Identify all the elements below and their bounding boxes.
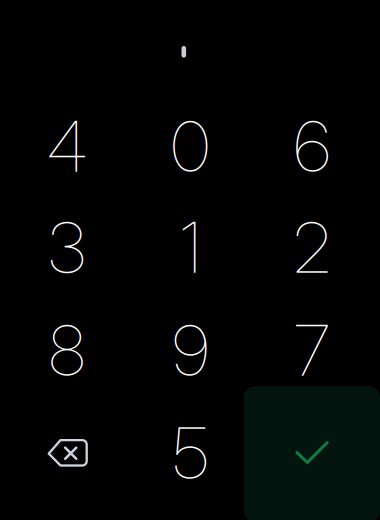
button[interactable]: 3 — [5, 196, 129, 298]
button[interactable]: Confirm — [244, 386, 380, 520]
staticText: 5 — [173, 411, 208, 495]
button[interactable]: 0 — [128, 95, 252, 197]
button[interactable]: 7 — [250, 299, 374, 401]
button[interactable]: 4 — [5, 95, 129, 197]
staticText: 7 — [294, 309, 330, 392]
staticText: 4 — [47, 105, 87, 188]
button[interactable]: 8 — [5, 299, 129, 401]
staticText: 8 — [49, 309, 85, 392]
button[interactable]: 9 — [128, 299, 252, 401]
button[interactable]: 1 — [128, 196, 252, 298]
staticText: 0 — [171, 105, 210, 188]
staticText: 9 — [172, 309, 208, 392]
button[interactable]: Delete — [5, 402, 129, 504]
staticText: 2 — [293, 206, 330, 289]
button[interactable]: 5 — [128, 402, 252, 504]
button[interactable]: 2 — [250, 196, 374, 298]
button[interactable]: 6 — [250, 95, 374, 197]
staticText: 3 — [48, 206, 85, 289]
staticText: 1 — [180, 206, 201, 289]
staticText: 6 — [294, 105, 330, 188]
